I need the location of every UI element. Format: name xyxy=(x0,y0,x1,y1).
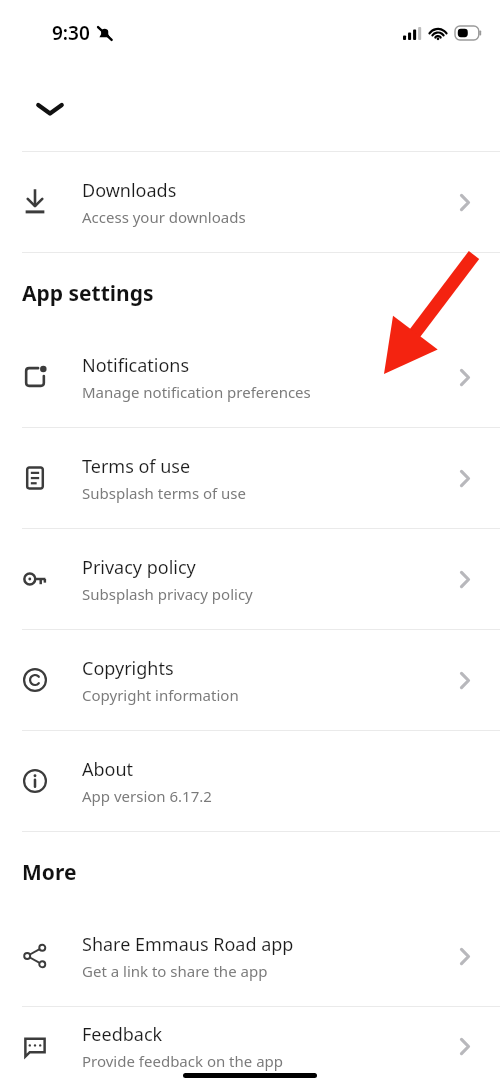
button[interactable]: About xyxy=(0,731,500,831)
button[interactable]: Collapse xyxy=(26,85,74,133)
staticText: Downloads xyxy=(82,178,177,203)
button[interactable]: Notifications xyxy=(0,327,500,427)
staticText: Privacy policy xyxy=(82,555,196,580)
staticText: Get a link to share the app xyxy=(82,961,268,981)
button[interactable]: Copyrights xyxy=(0,630,500,730)
button[interactable]: Downloads xyxy=(0,152,500,252)
staticText: Copyrights xyxy=(82,656,174,681)
staticText: Share Emmaus Road app xyxy=(82,932,294,957)
staticText: 9:30 xyxy=(52,20,90,46)
staticText: More xyxy=(22,858,77,887)
staticText: Feedback xyxy=(82,1022,163,1047)
staticText: App settings xyxy=(22,279,154,308)
button[interactable]: Terms of use xyxy=(0,428,500,528)
staticText: Manage notification preferences xyxy=(82,382,311,402)
staticText: Provide feedback on the app xyxy=(82,1051,284,1071)
staticText: Subsplash privacy policy xyxy=(82,584,253,604)
staticText: Terms of use xyxy=(82,454,191,479)
staticText: Access your downloads xyxy=(82,207,246,227)
staticText: Notifications xyxy=(82,353,190,378)
staticText: App version 6.17.2 xyxy=(82,786,212,806)
staticText: Subsplash terms of use xyxy=(82,483,247,503)
staticText: Copyright information xyxy=(82,685,239,705)
button[interactable]: Privacy policy xyxy=(0,529,500,629)
button[interactable]: Feedback xyxy=(0,1007,500,1086)
staticText: About xyxy=(82,757,134,782)
button[interactable]: Share Emmaus Road app xyxy=(0,906,500,1006)
